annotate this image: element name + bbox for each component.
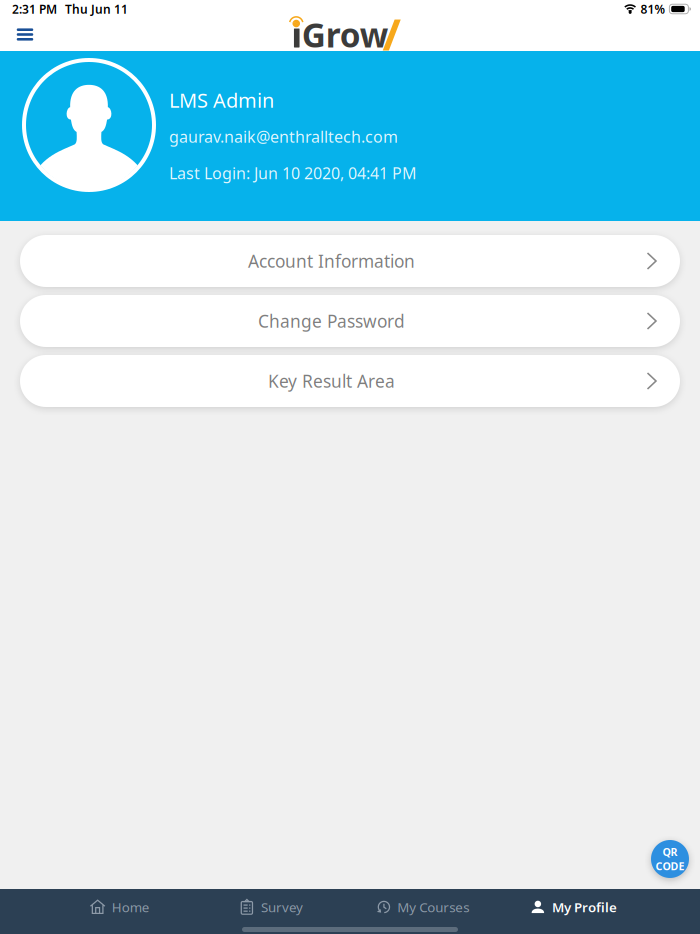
staticText: My Courses [397, 898, 469, 916]
staticText: gaurav.naik@enthralltech.com [169, 126, 398, 147]
staticText: Last Login: Jun 10 2020, 04:41 PM [169, 162, 417, 184]
staticText: Survey [261, 898, 303, 916]
staticText: CODE [655, 859, 684, 873]
button[interactable]: My Courses [346, 889, 498, 925]
button[interactable]: Key Result Area [20, 355, 680, 407]
staticText: Key Result Area [268, 369, 395, 392]
button[interactable]: Home [44, 889, 195, 925]
staticText: Home [112, 898, 150, 916]
button[interactable]: QR Code [651, 840, 689, 878]
staticText: Thu Jun 11 [65, 1, 128, 17]
button[interactable]: My Profile [498, 889, 649, 925]
button[interactable]: Survey [195, 889, 346, 925]
button[interactable]: Change Password [20, 295, 680, 347]
staticText: Change Password [258, 309, 405, 332]
staticText: QR [662, 845, 677, 859]
button[interactable]: Account Information [20, 235, 680, 287]
staticText: Account Information [248, 249, 415, 272]
staticText: LMS Admin [169, 87, 274, 113]
button[interactable]: Menu [8, 18, 42, 51]
staticText: 81% [640, 1, 665, 17]
staticText: 2:31 PM [12, 1, 57, 17]
staticText: My Profile [552, 898, 617, 916]
staticText: Grow [302, 12, 389, 57]
